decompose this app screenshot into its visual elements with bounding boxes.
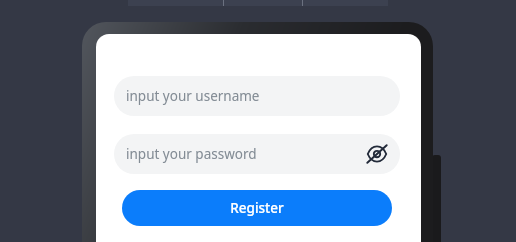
staticText: input your password: [126, 145, 257, 163]
staticText: Register: [230, 199, 284, 217]
staticText: input your username: [126, 87, 260, 105]
button[interactable]: Register: [122, 190, 392, 226]
button[interactable]: input your username: [114, 76, 400, 116]
button[interactable]: input your password: [114, 134, 400, 174]
button[interactable]: Toggle password visibility: [361, 138, 393, 170]
